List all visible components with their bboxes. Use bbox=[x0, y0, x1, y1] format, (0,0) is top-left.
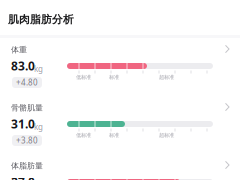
staticText: 超标准 bbox=[159, 74, 174, 81]
staticText: +3.80 bbox=[16, 135, 38, 146]
staticText: +4.80 bbox=[16, 77, 38, 88]
staticText: 83.0 bbox=[11, 58, 35, 74]
staticText: 超标准 bbox=[159, 132, 174, 139]
staticText: kg bbox=[34, 63, 43, 74]
staticText: 标准 bbox=[109, 74, 119, 81]
staticText: 肌肉脂肪分析 bbox=[8, 13, 74, 26]
staticText: kg bbox=[34, 121, 43, 132]
staticText: 低标准 bbox=[76, 132, 91, 139]
staticText: 31.0 bbox=[11, 116, 35, 132]
staticText: 标准 bbox=[109, 132, 119, 139]
staticText: 27.0 bbox=[11, 174, 35, 180]
staticText: 体脂肪量 bbox=[11, 161, 43, 171]
button[interactable]: 体脂肪量 bbox=[0, 0, 240, 180]
button[interactable]: 体重 bbox=[0, 0, 240, 180]
button[interactable]: 骨骼肌量 bbox=[0, 0, 240, 180]
staticText: 体重 bbox=[11, 45, 27, 55]
staticText: 低标准 bbox=[76, 74, 91, 81]
staticText: 骨骼肌量 bbox=[11, 103, 43, 113]
